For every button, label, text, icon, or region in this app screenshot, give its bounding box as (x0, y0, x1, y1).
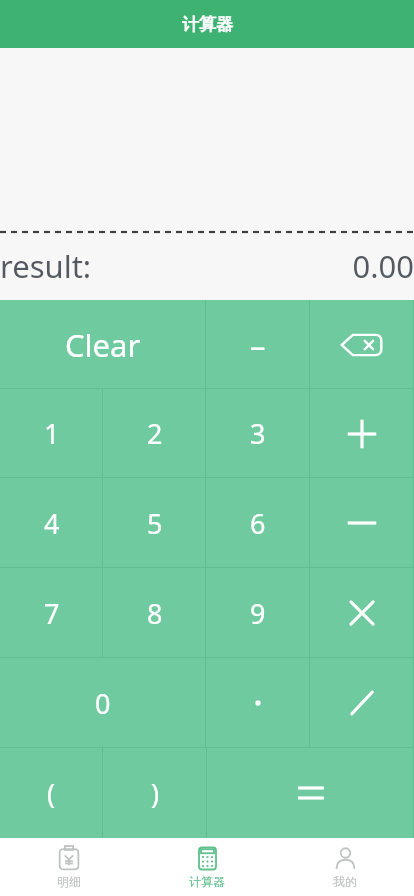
staticText: 明细 (57, 874, 81, 889)
staticText: 计算器 (189, 874, 225, 889)
staticText: 8 (147, 595, 163, 632)
staticText: 计算器 (182, 14, 233, 35)
staticText: result: (0, 245, 92, 287)
staticText: 6 (250, 505, 266, 542)
button[interactable]: Plus (310, 389, 414, 478)
staticText: 1 (44, 415, 60, 452)
staticText: 5 (147, 505, 163, 542)
button[interactable]: 4 (0, 478, 103, 568)
button[interactable]: 我的 (276, 838, 414, 896)
button[interactable]: ) (103, 748, 207, 838)
button[interactable]: 8 (103, 568, 206, 658)
staticText: 0 (95, 685, 111, 722)
staticText: 3 (250, 415, 266, 452)
button[interactable]: Divide (310, 658, 414, 748)
staticText: 4 (44, 505, 60, 542)
button[interactable]: 0 (0, 658, 206, 748)
button[interactable]: 明细 (0, 838, 138, 896)
button[interactable]: – (206, 300, 310, 389)
button[interactable]: 9 (206, 568, 310, 658)
button[interactable]: 3 (206, 389, 310, 478)
button[interactable]: 7 (0, 568, 103, 658)
staticText: 0.00 (352, 245, 414, 287)
staticText: ) (151, 775, 160, 812)
staticText: ( (47, 775, 56, 812)
button[interactable]: Equals (207, 748, 414, 838)
button[interactable]: 2 (103, 389, 206, 478)
staticText: 我的 (333, 874, 357, 889)
staticText: 9 (250, 595, 266, 632)
button[interactable]: Decimal point (206, 658, 310, 748)
button[interactable]: Backspace (310, 300, 414, 389)
button[interactable]: Minus (310, 478, 414, 568)
staticText: Clear (65, 324, 141, 366)
button[interactable]: 1 (0, 389, 103, 478)
staticText: – (250, 324, 266, 366)
staticText: 2 (147, 415, 163, 452)
button[interactable]: 5 (103, 478, 206, 568)
staticText: 7 (44, 595, 60, 632)
button[interactable]: 计算器 (138, 838, 276, 896)
button[interactable]: 6 (206, 478, 310, 568)
button[interactable]: ( (0, 748, 103, 838)
button[interactable]: Clear (0, 300, 206, 389)
button[interactable]: Multiply (310, 568, 414, 658)
